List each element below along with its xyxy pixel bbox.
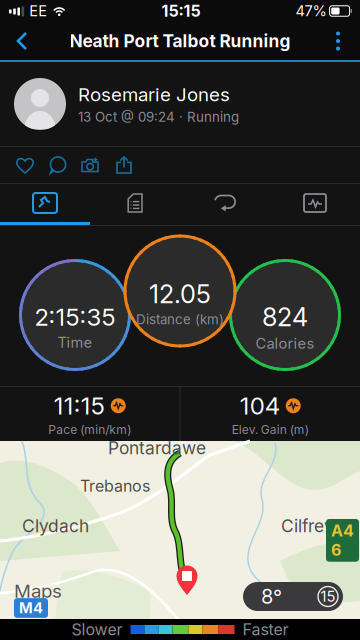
staticText: M4 <box>19 599 43 617</box>
button[interactable]: Comment <box>47 154 69 176</box>
button[interactable]: Add photo <box>80 154 102 176</box>
button[interactable]: Activity <box>0 184 90 222</box>
staticText: Faster <box>242 620 288 639</box>
staticText: Neath Port Talbot Running <box>69 30 290 51</box>
button[interactable]: Back <box>0 22 44 60</box>
staticText: Pontardawe <box>108 437 206 458</box>
button[interactable]: Charts <box>270 184 360 222</box>
staticText: Clydach <box>22 515 89 536</box>
staticText: 12.05 <box>149 279 211 309</box>
staticText: 47% <box>296 2 327 20</box>
staticText: 824 <box>262 302 308 332</box>
staticText: Slower <box>71 620 122 639</box>
staticText: Time <box>57 334 92 351</box>
staticText: EE <box>29 2 47 20</box>
staticText: Trebanos <box>80 476 150 496</box>
staticText: 13 Oct @ 09:24 · Running <box>78 109 239 125</box>
staticText: 15 <box>320 588 335 605</box>
staticText: 8° <box>261 584 282 609</box>
button[interactable]: Laps <box>180 184 270 222</box>
staticText: 2:15:35 <box>34 303 115 332</box>
staticText: 104 <box>240 391 280 420</box>
staticText: Distance (km) <box>136 311 224 327</box>
staticText: Rosemarie Jones <box>78 83 230 106</box>
button[interactable]: Share <box>113 154 135 176</box>
staticText: Elev. Gain (m) <box>232 422 309 437</box>
staticText: Maps <box>14 580 62 602</box>
staticText: A46 <box>331 521 354 560</box>
staticText: 15:15 <box>161 1 200 21</box>
button[interactable]: Like <box>14 154 36 176</box>
staticText: Calories <box>255 334 314 352</box>
button[interactable]: More options <box>316 22 360 60</box>
staticText: 11:15 <box>54 391 105 420</box>
button[interactable]: Details <box>90 184 180 222</box>
staticText: Cilfrew <box>281 515 338 536</box>
staticText: Pace (min/km) <box>48 422 131 437</box>
